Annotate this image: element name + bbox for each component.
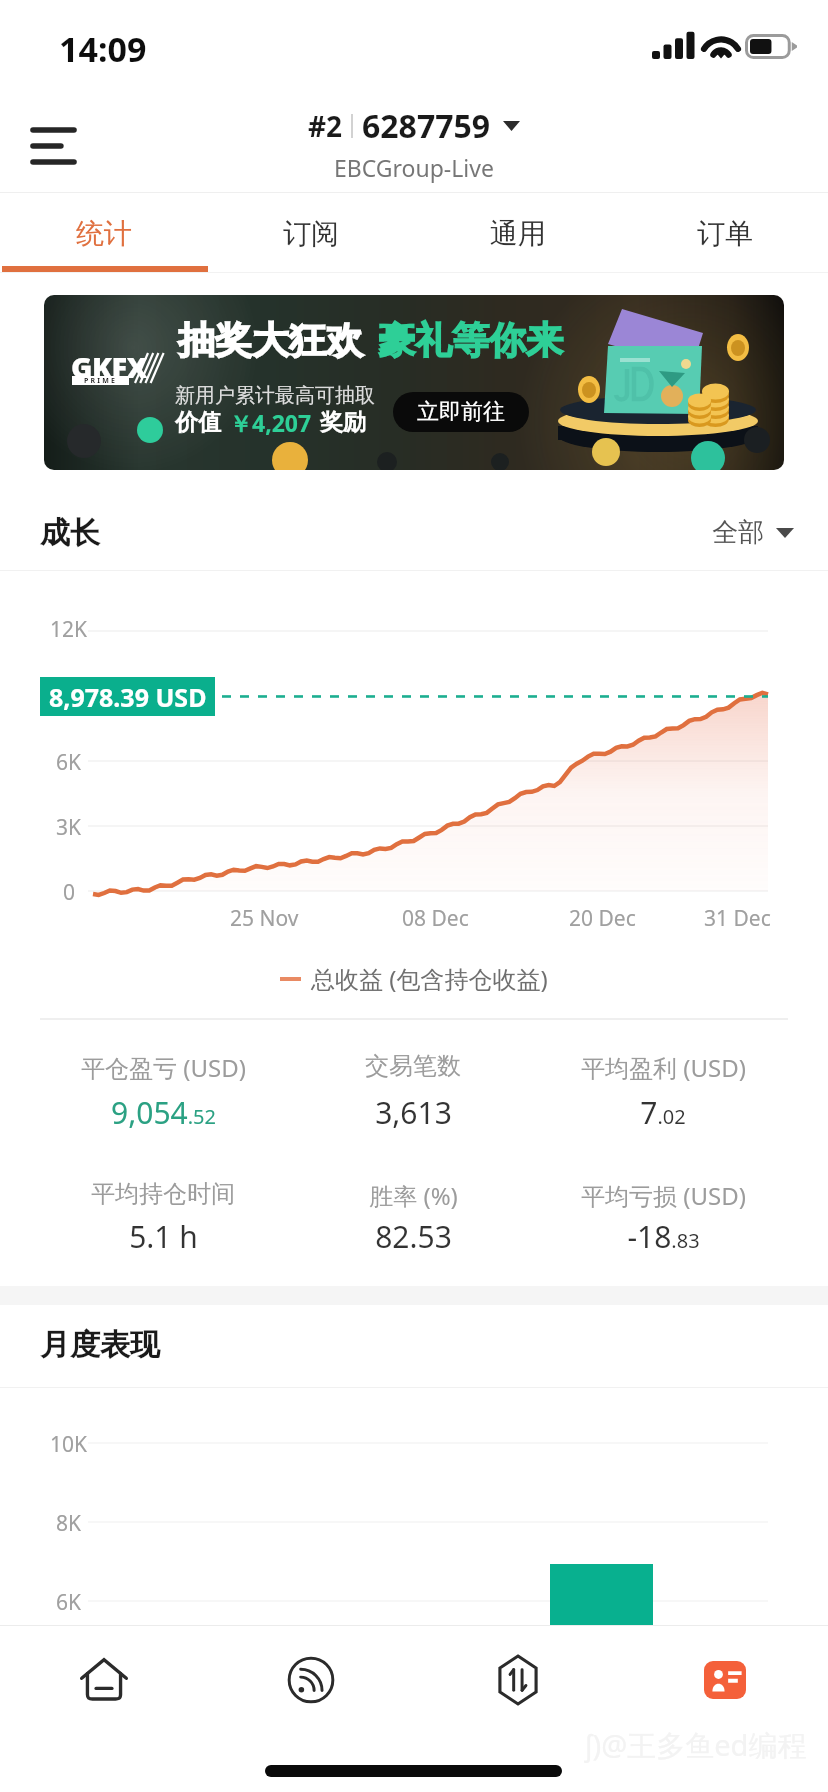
staticText: 平仓盈亏 (USD) [81, 1051, 246, 1084]
button[interactable]: 订单 [621, 193, 828, 273]
staticText: 8K [56, 1509, 82, 1538]
staticText: -18.83 [627, 1216, 700, 1257]
staticText: 6K [56, 1588, 82, 1617]
button[interactable]: Menu [20, 120, 86, 172]
staticText: 12K [50, 615, 88, 644]
staticText: 3K [56, 813, 82, 842]
staticText: 20 Dec [569, 904, 636, 933]
button[interactable]: 立即前往 [393, 392, 529, 432]
staticText: 月度表现 [40, 1326, 160, 1364]
staticText: 豪礼等你来 [378, 317, 563, 364]
staticText: EBCGroup-Live [334, 152, 494, 183]
staticText: 6287759 [362, 104, 491, 148]
button[interactable]: Trade [414, 1634, 621, 1726]
staticText: 25 Nov [230, 904, 299, 933]
staticText: 31 Dec [704, 904, 771, 933]
staticText: 胜率 (%) [369, 1179, 458, 1212]
staticText: 订单 [697, 216, 753, 251]
staticText: 交易笔数 [365, 1051, 461, 1081]
staticText: 通用 [490, 216, 546, 251]
staticText: ￥4,207 [229, 407, 312, 438]
staticText: 平均亏损 (USD) [581, 1179, 746, 1212]
button[interactable]: #2 [308, 104, 520, 183]
button[interactable]: Signals [207, 1634, 414, 1726]
staticText: GKFX [71, 347, 147, 386]
staticText: 新用户累计最高可抽取 [175, 383, 375, 408]
staticText: 6K [56, 748, 82, 777]
staticText: 14:09 [59, 26, 147, 72]
staticText: ʃ)@王多鱼ed编程 [585, 1725, 807, 1765]
button[interactable]: 订阅 [207, 193, 414, 273]
button[interactable]: 通用 [414, 193, 621, 273]
staticText: 订阅 [283, 216, 339, 251]
staticText: 立即前往 [417, 398, 505, 426]
button[interactable]: GKFX [44, 295, 784, 470]
staticText: 7.02 [640, 1092, 686, 1133]
staticText: 总收益 (包含持仓收益) [311, 962, 548, 995]
staticText: 奖励 [320, 408, 366, 437]
staticText: 9,054.52 [111, 1092, 216, 1133]
staticText: 抽奖大狂欢 [178, 317, 363, 364]
staticText: 平均持仓时间 [91, 1179, 235, 1209]
staticText: 价值 [175, 408, 221, 437]
button[interactable]: 全部 [712, 516, 794, 549]
staticText: 10K [50, 1430, 88, 1459]
staticText: 0 [63, 878, 76, 907]
staticText: PRIME [84, 376, 118, 385]
staticText: 08 Dec [402, 904, 469, 933]
staticText: 统计 [76, 216, 132, 251]
staticText: 3,613 [375, 1092, 452, 1133]
staticText: 成长 [40, 514, 100, 552]
staticText: #2 [308, 107, 343, 145]
button[interactable]: 统计 [0, 193, 207, 273]
staticText: 全部 [712, 516, 764, 549]
button[interactable]: Home [0, 1634, 207, 1726]
staticText: 平均盈利 (USD) [581, 1051, 746, 1084]
staticText: 8,978.39 USD [49, 680, 207, 714]
button[interactable]: Account [621, 1634, 828, 1726]
staticText: 5.1 h [129, 1216, 198, 1257]
staticText: 82.53 [375, 1216, 452, 1257]
